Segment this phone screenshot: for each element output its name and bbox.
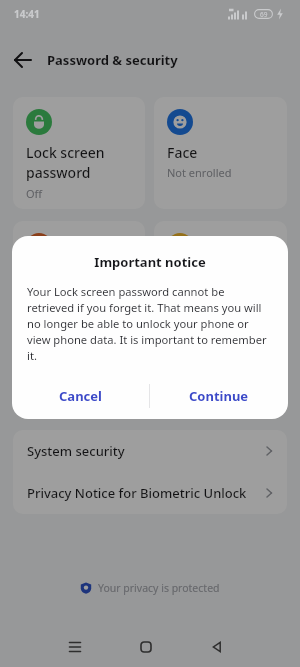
- button[interactable]: [210, 640, 224, 654]
- staticText: Password & security: [47, 51, 178, 69]
- staticText: Privacy Notice for Biometric Unlock: [27, 484, 247, 502]
- staticText: System security: [27, 442, 125, 460]
- button[interactable]: Lock screen password: [13, 97, 145, 209]
- button[interactable]: Privacy password: [154, 221, 287, 333]
- staticText: 69: [260, 10, 268, 19]
- staticText: Cancel: [59, 387, 102, 405]
- button[interactable]: Fingerprint: [13, 221, 145, 333]
- staticText: Important notice: [12, 253, 288, 271]
- button[interactable]: System security: [13, 430, 287, 472]
- staticText: Off: [26, 186, 43, 201]
- button[interactable]: [68, 640, 82, 654]
- button[interactable]: [14, 50, 34, 70]
- staticText: Not enrolled: [167, 165, 232, 180]
- button[interactable]: Privacy Notice for Biometric Unlock: [13, 472, 287, 514]
- staticText: Continue: [189, 387, 249, 405]
- staticText: Face: [167, 143, 198, 162]
- staticText: Off: [167, 310, 184, 325]
- button[interactable]: Cancel: [12, 376, 149, 416]
- staticText: Privacy password: [167, 267, 274, 307]
- button[interactable]: [139, 640, 153, 654]
- staticText: Not enrolled: [26, 289, 91, 304]
- button[interactable]: Face: [154, 97, 287, 209]
- staticText: Your Lock screen password cannot be retr…: [27, 284, 273, 363]
- staticText: Your privacy is protected: [98, 581, 220, 595]
- button[interactable]: Continue: [150, 376, 288, 416]
- staticText: 14:41: [14, 7, 40, 21]
- staticText: Lock screen password: [26, 143, 105, 183]
